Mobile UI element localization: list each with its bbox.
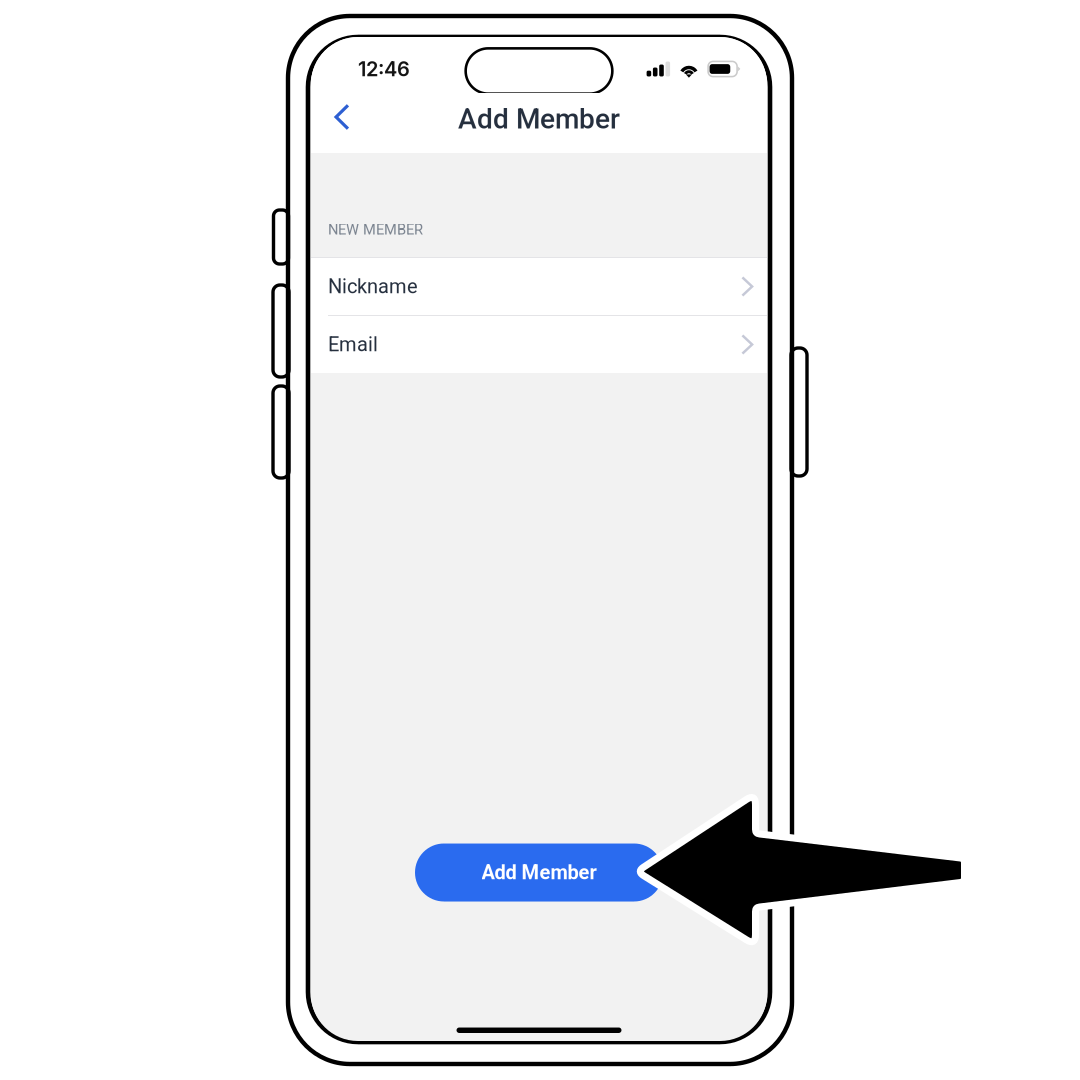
button[interactable]: Back (321, 93, 363, 141)
staticText: NEW MEMBER (328, 221, 423, 238)
staticText: Add Member (481, 861, 596, 884)
staticText: Add Member (458, 103, 620, 135)
button[interactable]: Nickname (311, 258, 767, 315)
button[interactable]: Email (311, 316, 767, 373)
staticText: Nickname (328, 275, 418, 298)
button[interactable]: Add Member (415, 843, 663, 901)
staticText: 12:46 (358, 57, 410, 81)
staticText: Email (328, 333, 378, 356)
